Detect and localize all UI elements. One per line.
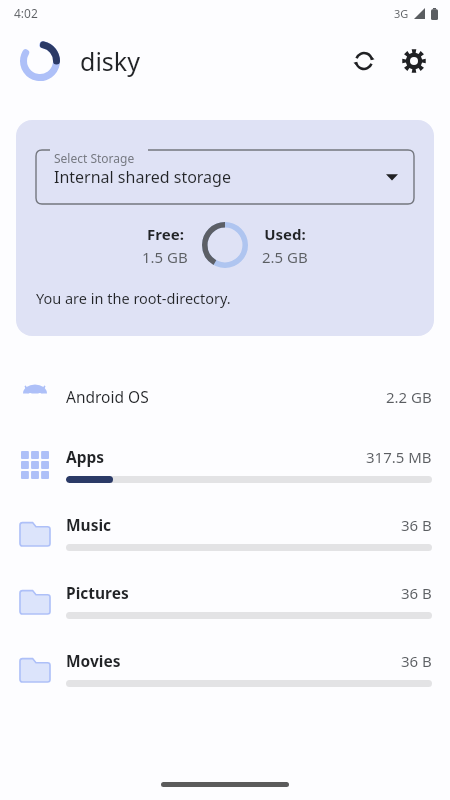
button[interactable]: Music <box>0 498 450 566</box>
button[interactable]: Select Storage <box>36 150 414 204</box>
staticText: 4:02 <box>14 5 38 21</box>
staticText: Apps <box>66 446 105 467</box>
staticText: Android OS <box>66 386 149 407</box>
staticText: Used: <box>264 224 306 244</box>
staticText: 1.5 GB <box>142 247 188 267</box>
button[interactable]: Android OS <box>0 362 450 430</box>
staticText: Music <box>66 514 112 535</box>
staticText: 2.2 GB <box>386 387 432 407</box>
staticText: 36 B <box>401 651 432 671</box>
button[interactable]: Apps <box>0 430 450 498</box>
staticText: Movies <box>66 650 121 671</box>
staticText: 36 B <box>401 515 432 535</box>
staticText: Free: <box>147 224 184 244</box>
staticText: You are in the root-directory. <box>36 288 231 308</box>
button[interactable]: Movies <box>0 634 450 702</box>
staticText: disky <box>80 44 140 78</box>
staticText: 317.5 MB <box>366 447 432 467</box>
staticText: Pictures <box>66 582 129 603</box>
staticText: 3G <box>394 6 409 21</box>
button[interactable]: Select Storage <box>16 120 434 336</box>
staticText: 36 B <box>401 583 432 603</box>
staticText: Internal shared storage <box>54 166 231 188</box>
staticText: Select Storage <box>54 150 135 166</box>
staticText: 2.5 GB <box>262 247 308 267</box>
button[interactable]: Settings <box>392 39 436 83</box>
button[interactable]: Pictures <box>0 566 450 634</box>
button[interactable]: Refresh <box>342 39 386 83</box>
button[interactable]: disky logo <box>14 35 66 87</box>
